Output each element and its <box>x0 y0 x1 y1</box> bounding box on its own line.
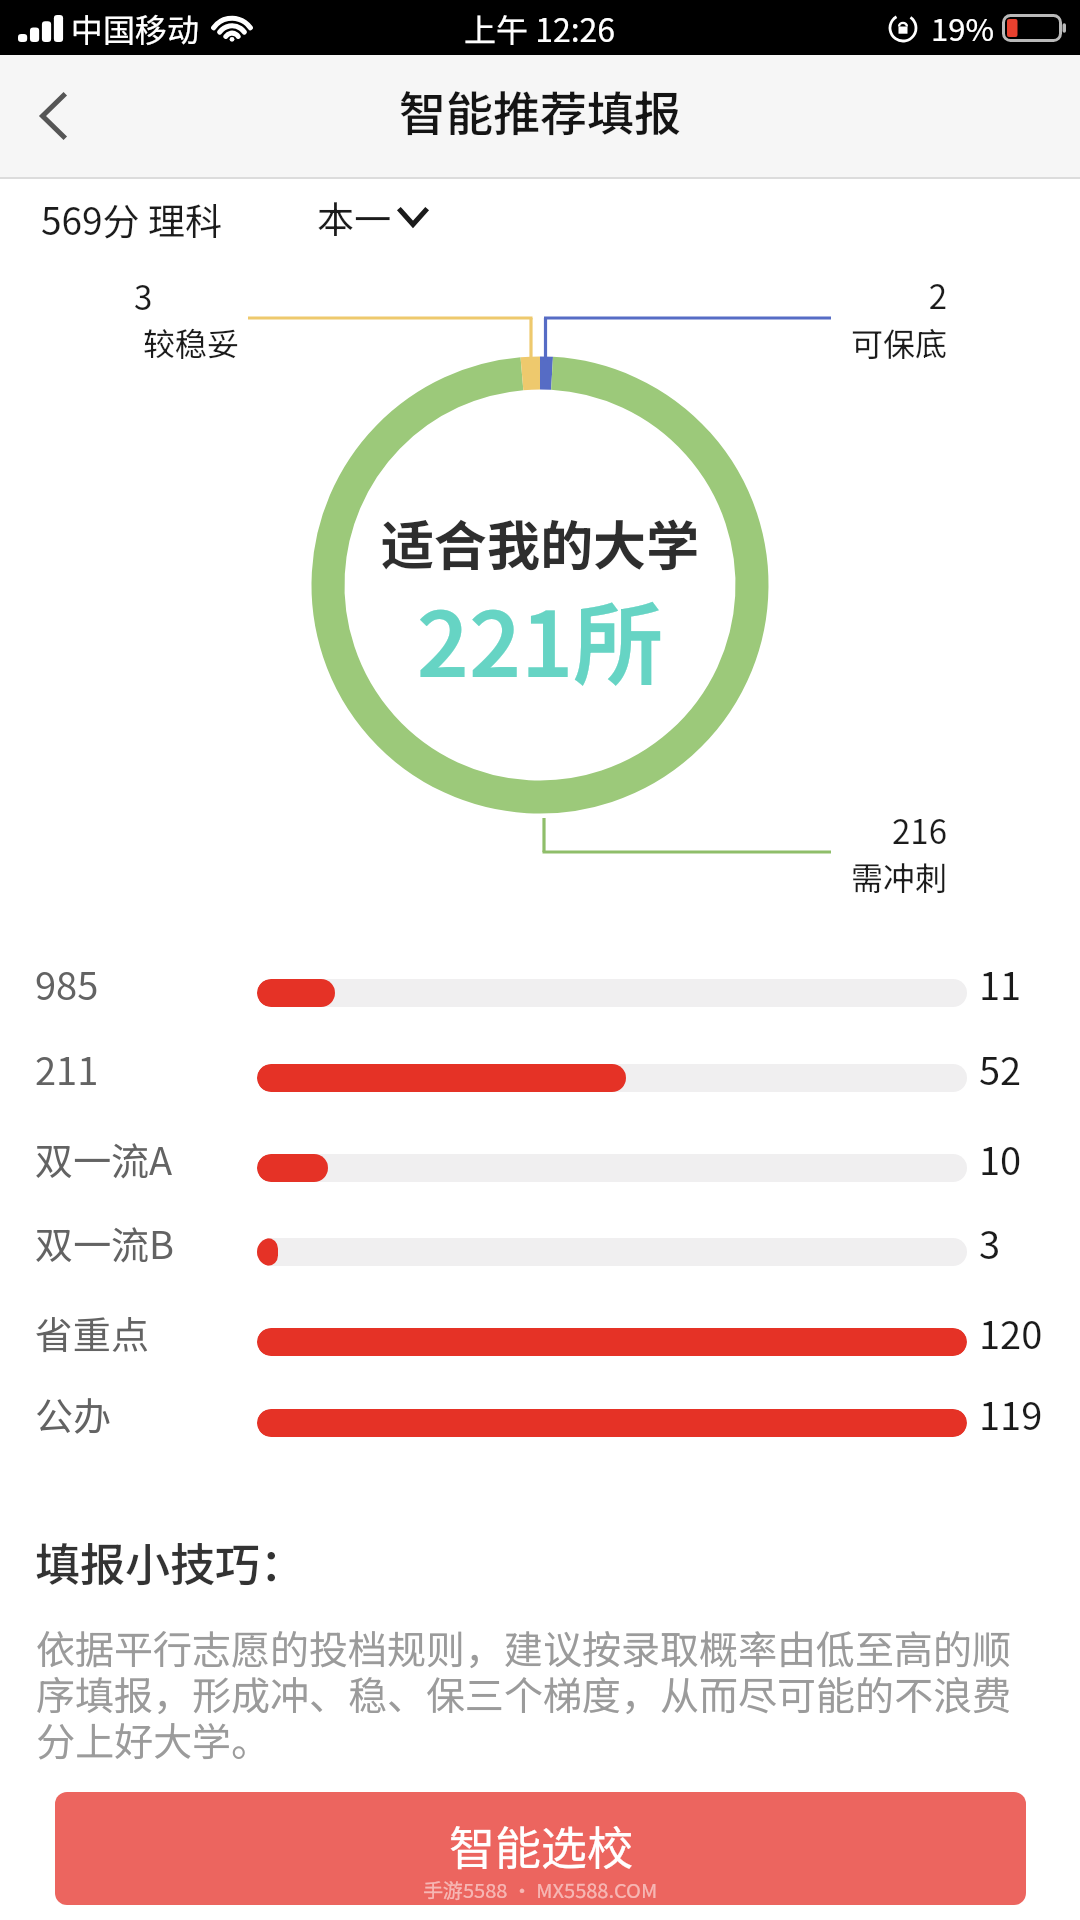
staticText: 手游5588 · MX5588.COM <box>423 1875 658 1904</box>
button[interactable]: 公办 <box>0 1381 1080 1465</box>
button[interactable]: Back <box>0 55 110 174</box>
staticText: 省重点 <box>35 1305 150 1360</box>
staticText: 本一 <box>317 190 391 244</box>
staticText: 较稳妥 <box>143 319 240 365</box>
button[interactable]: 双一流B <box>0 1210 1080 1294</box>
staticText: 216 <box>747 806 947 854</box>
staticText: 120 <box>979 1305 1043 1360</box>
staticText: 211 <box>35 1041 99 1096</box>
button[interactable]: 211 <box>0 1036 1080 1120</box>
button[interactable]: 985 <box>0 951 1080 1035</box>
staticText: 10 <box>979 1131 1022 1186</box>
staticText: 52 <box>979 1041 1022 1096</box>
staticText: 3 <box>134 272 153 320</box>
staticText: 11 <box>979 956 1022 1011</box>
staticText: 双一流B <box>35 1215 174 1270</box>
button[interactable]: 本一 <box>313 186 432 248</box>
staticText: 适合我的大学 <box>0 504 1080 581</box>
staticText: 智能推荐填报 <box>0 76 1080 144</box>
staticText: 569分 理科 <box>41 192 222 246</box>
staticText: 中国移动 <box>71 5 200 51</box>
staticText: 公办 <box>35 1386 112 1441</box>
staticText: 119 <box>979 1386 1043 1441</box>
staticText: 3 <box>979 1215 1001 1270</box>
staticText: 可保底 <box>747 319 947 365</box>
staticText: 985 <box>35 956 99 1011</box>
staticText: 需冲刺 <box>747 853 947 899</box>
staticText: 221所 <box>0 573 1080 703</box>
staticText: 智能选校 <box>449 1812 633 1879</box>
staticText: 19% <box>931 5 994 50</box>
button[interactable]: 双一流A <box>0 1126 1080 1210</box>
button[interactable]: 智能选校 <box>55 1792 1026 1905</box>
staticText: 依据平行志愿的投档规则，建议按录取概率由低至高的顺序填报，形成冲、稳、保三个梯度… <box>36 1619 1026 1767</box>
staticText: 双一流A <box>35 1131 173 1186</box>
button[interactable]: 省重点 <box>0 1300 1080 1384</box>
staticText: 上午 12:26 <box>464 5 616 51</box>
staticText: 填报小技巧： <box>35 1529 306 1594</box>
staticText: 2 <box>747 271 947 319</box>
